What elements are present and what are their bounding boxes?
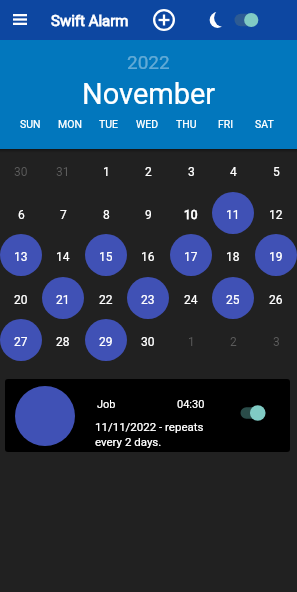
button[interactable]: 22 (85, 277, 127, 319)
staticText: 17 (184, 250, 198, 264)
button[interactable]: 7 (42, 192, 84, 234)
button[interactable]: Toggle all alarms (228, 7, 264, 33)
staticText: 1 (188, 335, 195, 349)
button[interactable]: Toggle night mode (206, 8, 230, 32)
staticText: 21 (56, 293, 70, 307)
staticText: 15 (99, 250, 113, 264)
staticText: 29 (99, 335, 113, 349)
button[interactable]: 29 (85, 319, 127, 361)
staticText: 8 (103, 208, 110, 222)
button[interactable]: 31 (42, 149, 84, 191)
staticText: SAT (255, 118, 274, 130)
staticText: 5 (273, 165, 280, 179)
staticText: 28 (56, 335, 70, 349)
button[interactable]: 2 (212, 319, 254, 361)
staticText: 26 (269, 293, 283, 307)
button[interactable]: 14 (42, 234, 84, 276)
button[interactable]: 24 (170, 277, 212, 319)
staticText: 25 (226, 293, 240, 307)
button[interactable]: Add alarm (149, 5, 178, 34)
staticText: TUE (99, 118, 119, 130)
button[interactable]: 28 (42, 319, 84, 361)
button[interactable]: 2 (127, 149, 169, 191)
staticText: 2022 (127, 51, 170, 73)
button[interactable]: 3 (170, 149, 212, 191)
staticText: 11/11/2022 - repeats every 2 days. (95, 420, 204, 449)
button[interactable]: 3 (255, 319, 297, 361)
button[interactable]: 6 (0, 192, 42, 234)
button[interactable]: 21 (42, 277, 84, 319)
button[interactable]: 15 (85, 234, 127, 276)
button[interactable]: 9 (127, 192, 169, 234)
staticText: Job (97, 398, 116, 411)
staticText: 22 (99, 293, 113, 307)
staticText: 30 (14, 165, 28, 179)
staticText: 31 (56, 165, 70, 179)
staticText: 2 (145, 165, 152, 179)
button[interactable]: 11 (212, 192, 254, 234)
staticText: 6 (18, 208, 25, 222)
staticText: November (82, 77, 216, 111)
button[interactable]: 8 (85, 192, 127, 234)
button[interactable]: 19 (255, 234, 297, 276)
staticText: 1 (103, 165, 110, 179)
button[interactable]: 18 (212, 234, 254, 276)
staticText: 13 (14, 250, 28, 264)
staticText: 18 (226, 250, 240, 264)
staticText: 7 (60, 208, 67, 222)
button[interactable]: Toggle alarm (234, 401, 270, 425)
button[interactable]: 23 (127, 277, 169, 319)
staticText: 30 (141, 335, 155, 349)
staticText: 04:30 (177, 398, 205, 411)
staticText: FRI (218, 118, 234, 130)
staticText: 24 (184, 293, 198, 307)
button[interactable]: 16 (127, 234, 169, 276)
staticText: 23 (141, 293, 155, 307)
staticText: 9 (145, 208, 152, 222)
staticText: 3 (273, 335, 280, 349)
staticText: 4 (230, 165, 237, 179)
staticText: 20 (14, 293, 28, 307)
staticText: Swift Alarm (51, 12, 129, 30)
staticText: 11 (226, 208, 240, 222)
button[interactable]: 5 (255, 149, 297, 191)
staticText: THU (176, 118, 197, 130)
staticText: 2 (230, 335, 237, 349)
button[interactable]: 1 (85, 149, 127, 191)
button[interactable]: 4 (212, 149, 254, 191)
button[interactable]: 13 (0, 234, 42, 276)
button[interactable]: 25 (212, 277, 254, 319)
button[interactable]: 26 (255, 277, 297, 319)
button[interactable]: 27 (0, 319, 42, 361)
staticText: WED (136, 118, 159, 130)
button[interactable]: 10 (170, 192, 212, 234)
button[interactable]: 20 (0, 277, 42, 319)
staticText: 14 (56, 250, 70, 264)
staticText: SUN (20, 118, 41, 130)
staticText: 3 (188, 165, 195, 179)
button[interactable]: 12 (255, 192, 297, 234)
staticText: 10 (184, 208, 198, 222)
staticText: 27 (14, 335, 28, 349)
staticText: 19 (269, 250, 283, 264)
button[interactable]: 17 (170, 234, 212, 276)
button[interactable]: 30 (0, 149, 42, 191)
button[interactable]: 30 (127, 319, 169, 361)
button[interactable]: Job (5, 379, 290, 452)
staticText: 12 (269, 208, 283, 222)
button[interactable]: 1 (170, 319, 212, 361)
button[interactable]: Open navigation menu (6, 5, 34, 33)
staticText: MON (58, 118, 82, 130)
staticText: 16 (141, 250, 155, 264)
